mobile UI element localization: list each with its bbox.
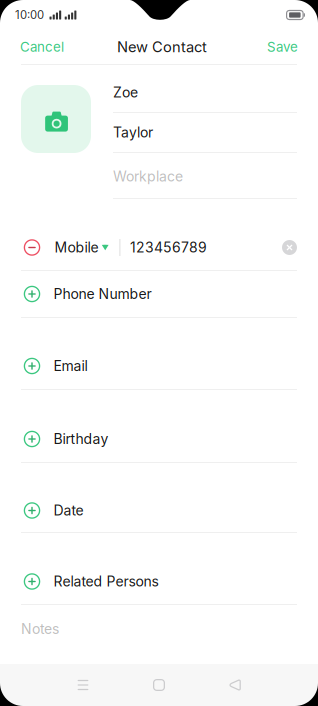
staticText: Workplace <box>113 168 183 185</box>
staticText: Email <box>53 357 87 374</box>
staticText: Zoe <box>113 84 138 101</box>
button[interactable]: Save <box>267 34 298 60</box>
staticText: Mobile <box>54 239 98 256</box>
staticText: Cancel <box>20 39 64 55</box>
button[interactable]: Cancel <box>20 34 64 60</box>
staticText: New Contact <box>117 38 207 56</box>
button[interactable]: Email <box>21 343 297 390</box>
button[interactable]: Phone Number <box>21 271 297 318</box>
button[interactable]: Back <box>208 665 262 705</box>
staticText: Notes <box>21 620 59 637</box>
staticText: Birthday <box>53 430 108 447</box>
button[interactable]: Related Persons <box>21 559 297 605</box>
button[interactable]: Recents <box>56 665 110 705</box>
staticText: Related Persons <box>53 573 158 590</box>
staticText: 123456789 <box>130 239 207 256</box>
button[interactable]: Date <box>21 489 297 533</box>
staticText: 10:00 <box>15 8 44 22</box>
staticText: Save <box>267 39 298 55</box>
staticText: Date <box>53 502 83 519</box>
staticText: Taylor <box>113 124 153 141</box>
button[interactable]: Home <box>132 665 186 705</box>
staticText: Phone Number <box>53 285 151 302</box>
button[interactable]: Birthday <box>21 416 297 463</box>
